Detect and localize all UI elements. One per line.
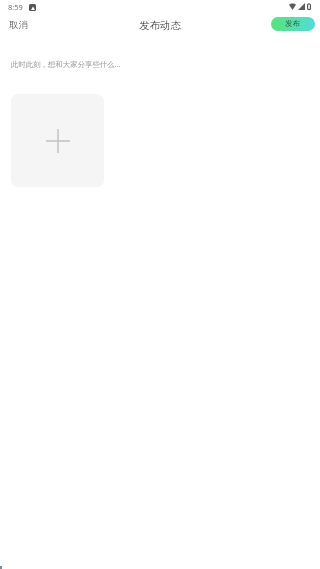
staticText: 取消 xyxy=(9,19,28,31)
button[interactable]: Add photo xyxy=(11,94,104,187)
staticText: 发布 xyxy=(285,19,301,29)
staticText: 此时此刻，想和大家分享些什么... xyxy=(11,59,121,69)
button[interactable]: 此时此刻，想和大家分享些什么... xyxy=(0,48,320,88)
button[interactable]: 发布 xyxy=(271,17,315,31)
button[interactable]: 取消 xyxy=(0,11,37,39)
staticText: 发布动态 xyxy=(0,19,320,32)
staticText: 8:59 xyxy=(8,2,23,12)
